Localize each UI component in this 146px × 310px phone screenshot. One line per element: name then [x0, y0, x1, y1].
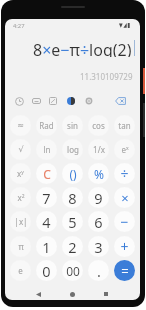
staticText: 5 [68, 212, 77, 232]
button[interactable]: x2 [10, 187, 31, 208]
staticText: 9 [94, 188, 103, 208]
staticText: 1/x [93, 144, 105, 155]
staticText: e [18, 265, 23, 276]
button[interactable]: . [88, 260, 109, 281]
button[interactable]: C [36, 163, 57, 184]
button[interactable]: 0 [36, 260, 57, 281]
button[interactable]: Home [64, 286, 80, 300]
button[interactable]: Recents [98, 286, 114, 300]
button[interactable]: Theme [64, 94, 78, 108]
button[interactable]: + [114, 236, 135, 257]
button[interactable]: History [12, 94, 26, 108]
button[interactable]: ≈ [10, 115, 31, 136]
button[interactable]: ex [114, 139, 135, 160]
button[interactable]: Rad [36, 115, 57, 136]
button[interactable]: = [114, 260, 135, 281]
staticText: % [94, 166, 104, 182]
button[interactable]: 8 [62, 187, 83, 208]
staticText: 11.310109729 [80, 71, 133, 82]
staticText: 4 [42, 212, 51, 232]
staticText: ≈ [17, 121, 24, 130]
staticText: + [120, 237, 129, 256]
button[interactable]: − [114, 211, 135, 232]
button[interactable]: 00 [62, 260, 83, 281]
button[interactable]: tan [114, 115, 135, 136]
staticText: () [69, 166, 77, 182]
button[interactable]: 1/x [88, 139, 109, 160]
staticText: 7 [42, 188, 51, 208]
staticText: 1 [42, 237, 51, 257]
staticText: − [120, 212, 129, 231]
button[interactable]: cos [88, 115, 109, 136]
button[interactable]: π [10, 236, 31, 257]
staticText: 00 [66, 263, 80, 279]
staticText: sin [67, 120, 78, 131]
staticText: × [121, 189, 129, 207]
button[interactable]: log [62, 139, 83, 160]
button[interactable]: Unit converter [46, 94, 60, 108]
button[interactable]: 1 [36, 236, 57, 257]
staticText: 6 [94, 212, 103, 232]
button[interactable]: |x| [10, 211, 31, 232]
button[interactable]: 9 [88, 187, 109, 208]
staticText: ÷ [120, 164, 129, 183]
button[interactable]: () [62, 163, 83, 184]
button[interactable]: 3 [88, 236, 109, 257]
button[interactable]: xy [10, 163, 31, 184]
button[interactable]: 6 [88, 211, 109, 232]
staticText: 3 [94, 237, 103, 257]
staticText: = [121, 262, 129, 280]
button[interactable]: 2 [62, 236, 83, 257]
button[interactable]: Settings [82, 94, 96, 108]
button[interactable]: Keyboard [29, 94, 43, 108]
staticText: |x| [14, 216, 28, 227]
button[interactable]: √ [10, 139, 31, 160]
button[interactable]: e [10, 260, 31, 281]
staticText: cos [92, 120, 105, 131]
button[interactable]: 5 [62, 211, 83, 232]
staticText: 0 [42, 261, 51, 281]
staticText: xy [17, 168, 24, 179]
staticText: 8×e−π÷log(2) [33, 39, 132, 57]
button[interactable]: 7 [36, 187, 57, 208]
staticText: ex [121, 144, 129, 155]
button[interactable]: 4 [36, 211, 57, 232]
staticText: . [97, 261, 101, 281]
staticText: √ [18, 145, 24, 154]
staticText: 8 [68, 188, 77, 208]
staticText: tan [118, 120, 131, 131]
staticText: π [18, 241, 24, 252]
button[interactable]: ÷ [114, 163, 135, 184]
staticText: ln [43, 144, 51, 155]
button[interactable]: Backspace [113, 94, 127, 108]
button[interactable]: ln [36, 139, 57, 160]
staticText: x2 [17, 192, 25, 203]
staticText: C [43, 166, 51, 182]
staticText: 2 [68, 237, 77, 257]
staticText: Rad [39, 120, 54, 131]
staticText: log [67, 144, 79, 155]
button[interactable]: % [88, 163, 109, 184]
button[interactable]: Back [30, 286, 46, 300]
staticText: 4:27 [13, 22, 25, 30]
button[interactable]: sin [62, 115, 83, 136]
button[interactable]: × [114, 187, 135, 208]
